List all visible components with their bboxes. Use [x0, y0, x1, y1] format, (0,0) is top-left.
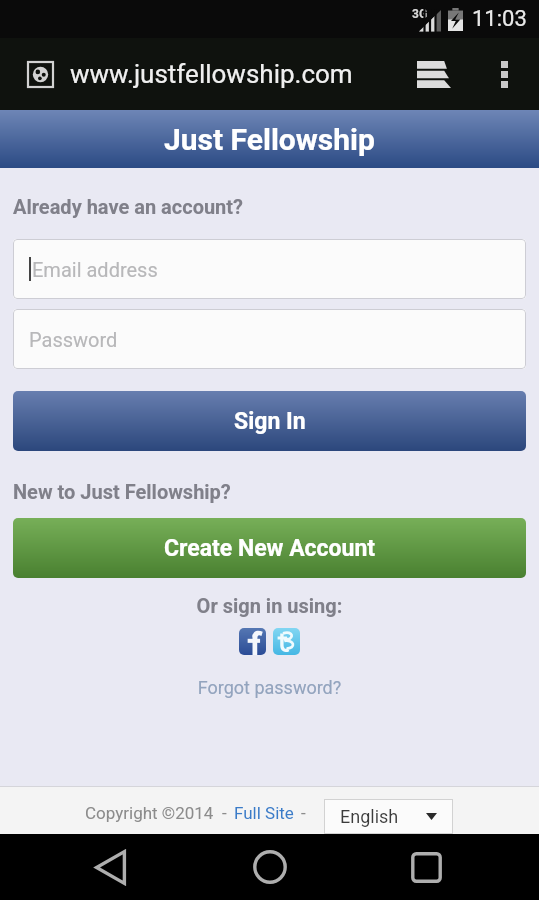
button[interactable]: More options — [484, 54, 524, 94]
button[interactable]: Forgot password? — [13, 677, 526, 698]
staticText: 11:03 — [472, 6, 527, 32]
button[interactable]: Full Site — [234, 803, 294, 823]
staticText: English — [340, 806, 399, 827]
staticText: www.justfellowship.com — [70, 59, 353, 89]
button[interactable]: Home — [246, 843, 294, 891]
button[interactable]: Recent apps — [402, 843, 450, 891]
button[interactable]: Sign in with Facebook — [239, 628, 266, 655]
staticText: Just Fellowship — [164, 122, 375, 157]
button[interactable]: Tabs — [412, 52, 456, 96]
staticText: Email address — [32, 258, 158, 281]
staticText: - — [222, 803, 227, 823]
staticText: Password — [29, 328, 118, 351]
button[interactable]: Create New Account — [13, 518, 526, 578]
button[interactable]: Password — [13, 309, 526, 369]
staticText: Already have an account? — [13, 195, 244, 218]
staticText: - — [301, 803, 306, 823]
staticText: Create New Account — [164, 535, 376, 562]
staticText: Sign In — [234, 408, 306, 435]
button[interactable]: Sign In — [13, 391, 526, 451]
staticText: New to Just Fellowship? — [13, 480, 231, 503]
staticText: 3G — [412, 7, 428, 21]
button[interactable]: English — [324, 799, 453, 834]
staticText: Or sign in using: — [13, 594, 526, 617]
staticText: Copyright ©2014 — [85, 803, 214, 823]
button[interactable]: Site info — [26, 60, 54, 88]
button[interactable]: Email address — [13, 239, 526, 299]
button[interactable]: Back — [86, 843, 134, 891]
button[interactable]: Sign in with Twitter — [273, 628, 300, 655]
